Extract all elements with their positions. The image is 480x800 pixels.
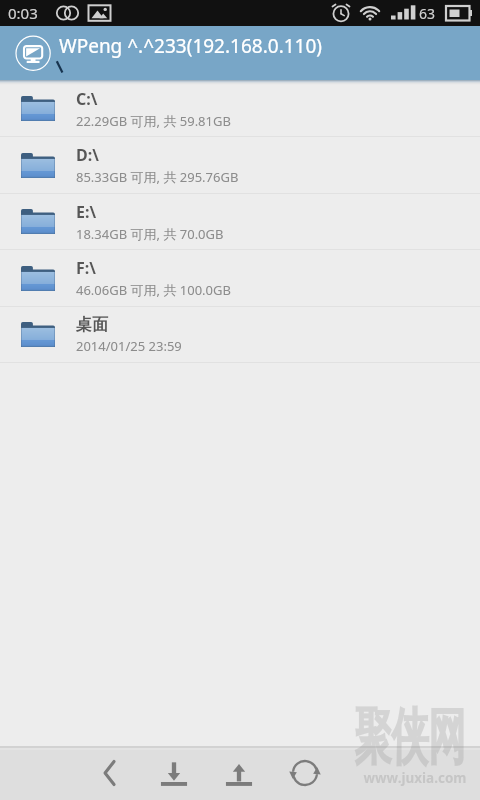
staticText: 46.06GB 可用, 共 100.0GB — [76, 281, 231, 299]
button[interactable]: 桌面 — [0, 307, 480, 363]
staticText: F:\ — [76, 257, 96, 279]
staticText: 18.34GB 可用, 共 70.0GB — [76, 225, 224, 243]
button[interactable]: F:\ — [0, 250, 480, 307]
staticText: www.juxia.com — [363, 769, 467, 787]
staticText: 2014/01/25 23:59 — [76, 337, 182, 355]
staticText: 桌面 — [76, 315, 108, 335]
button[interactable]: D:\ — [0, 137, 480, 194]
staticText: 0:03 — [8, 3, 38, 23]
button[interactable]: C:\ — [0, 81, 480, 137]
button[interactable]: Back — [85, 748, 135, 798]
staticText: C:\ — [76, 88, 98, 110]
staticText: WPeng ^.^233(192.168.0.110) — [59, 33, 323, 59]
button[interactable]: Upload — [214, 748, 264, 798]
button[interactable]: E:\ — [0, 194, 480, 250]
button[interactable]: Refresh — [280, 748, 330, 798]
staticText: E:\ — [76, 201, 97, 223]
staticText: 聚侠网 — [354, 698, 465, 776]
staticText: 22.29GB 可用, 共 59.81GB — [76, 112, 231, 130]
staticText: 85.33GB 可用, 共 295.76GB — [76, 168, 239, 186]
button[interactable]: Connected device — [0, 26, 480, 80]
button[interactable]: Download — [149, 748, 199, 798]
staticText: 63 — [419, 4, 436, 23]
staticText: D:\ — [76, 144, 99, 166]
other: Connected device — [0, 26, 480, 80]
